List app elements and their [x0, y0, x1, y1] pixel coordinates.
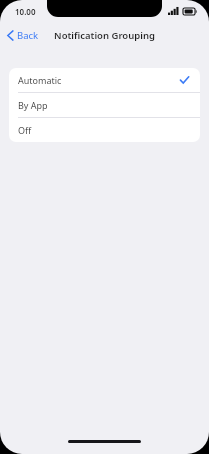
staticText: Off [18, 124, 32, 136]
button[interactable]: Automatic [9, 68, 200, 92]
staticText: Back [17, 29, 39, 42]
button[interactable]: By App [9, 93, 200, 117]
button[interactable]: Off [9, 118, 200, 142]
button[interactable]: Back [0, 26, 47, 45]
staticText: Notification Grouping [54, 29, 155, 42]
staticText: Automatic [18, 74, 62, 86]
staticText: By App [18, 99, 48, 111]
other: Selected [180, 76, 189, 84]
staticText: 10.00 [15, 6, 36, 17]
